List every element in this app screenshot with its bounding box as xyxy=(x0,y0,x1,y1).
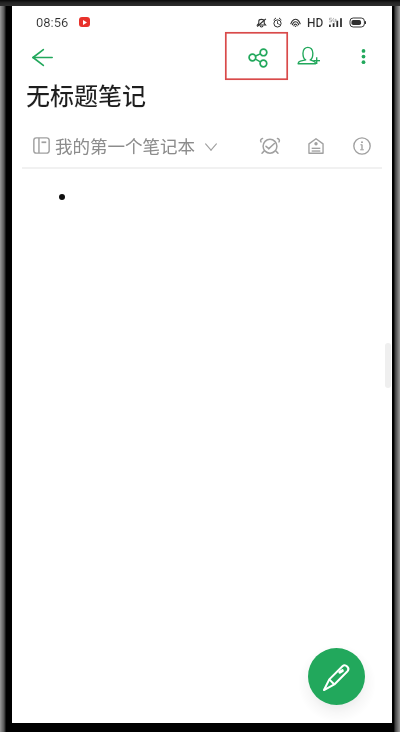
button[interactable]: Tag xyxy=(300,130,332,162)
button[interactable]: 我的第一个笔记本 xyxy=(33,132,217,158)
button[interactable]: New note xyxy=(308,648,365,705)
staticText: 08:56 xyxy=(36,15,69,30)
staticText: HD xyxy=(307,16,324,30)
button[interactable]: Add collaborator xyxy=(293,40,323,72)
button[interactable]: Reminder xyxy=(254,130,286,162)
button[interactable]: Share xyxy=(225,32,288,80)
staticText: 无标题笔记 xyxy=(26,77,146,112)
button[interactable]: Back xyxy=(22,37,62,77)
staticText: 我的第一个笔记本 xyxy=(55,133,195,158)
button[interactable]: Info xyxy=(346,130,378,162)
button[interactable]: More options xyxy=(349,40,377,72)
